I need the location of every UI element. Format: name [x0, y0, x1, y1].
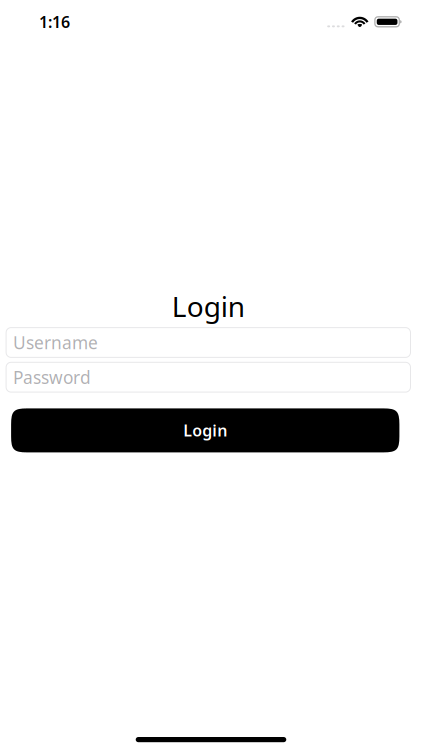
- button[interactable]: Login: [11, 408, 399, 452]
- staticText: Login: [183, 420, 227, 441]
- staticText: Password: [13, 366, 91, 389]
- staticText: Username: [13, 331, 98, 354]
- button[interactable]: Password: [6, 362, 410, 392]
- staticText: 1:16: [39, 11, 70, 32]
- button[interactable]: Username: [6, 328, 410, 357]
- staticText: Login: [172, 287, 245, 325]
